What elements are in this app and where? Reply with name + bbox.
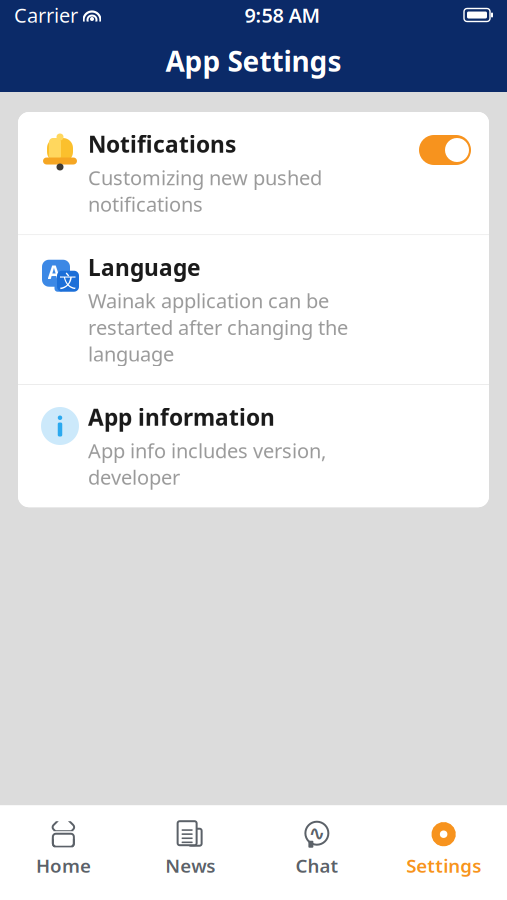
staticText: App Settings bbox=[165, 42, 341, 80]
button[interactable]: Settings bbox=[380, 813, 507, 886]
button[interactable]: App information bbox=[18, 385, 489, 507]
button[interactable]: ∿ bbox=[253, 813, 380, 886]
staticText: Wainak application can be restarted afte… bbox=[88, 287, 348, 367]
button[interactable]: News bbox=[127, 813, 254, 886]
staticText: Customizing new pushed notifications bbox=[88, 164, 322, 217]
staticText: Chat bbox=[295, 853, 338, 878]
staticText: ∿ bbox=[308, 822, 325, 845]
staticText: Notifications bbox=[88, 129, 236, 159]
button[interactable]: A bbox=[18, 235, 489, 384]
button[interactable]: Notifications bbox=[18, 112, 489, 234]
staticText: News bbox=[165, 853, 215, 878]
staticText: Language bbox=[88, 252, 201, 282]
staticText: A bbox=[47, 260, 60, 285]
staticText: 文 bbox=[59, 271, 76, 292]
staticText: Home bbox=[36, 853, 91, 878]
staticText: Carrier bbox=[14, 2, 78, 28]
staticText: App information bbox=[88, 402, 275, 432]
staticText: App info includes version, developer bbox=[88, 437, 326, 490]
staticText: 9:58 AM bbox=[244, 2, 320, 28]
button[interactable]: Home bbox=[0, 813, 127, 886]
staticText: Settings bbox=[406, 853, 481, 878]
